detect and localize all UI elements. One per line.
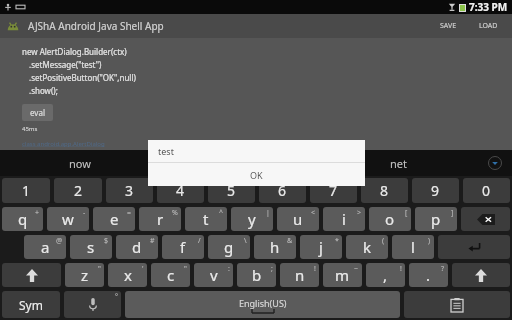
- staticText: =: [127, 208, 132, 218]
- button[interactable]: u: [277, 207, 319, 231]
- button[interactable]: k: [346, 235, 388, 259]
- button[interactable]: t: [185, 207, 227, 231]
- button[interactable]: 7: [310, 178, 357, 203]
- button[interactable]: j: [300, 235, 342, 259]
- staticText: a: [41, 237, 50, 257]
- staticText: eval: [30, 107, 45, 118]
- button[interactable]: b: [237, 263, 276, 287]
- staticText: LOAD: [479, 21, 498, 31]
- staticText: p: [431, 209, 441, 229]
- staticText: y: [248, 209, 256, 229]
- button[interactable]: class android.app.AlertDialog: [22, 140, 105, 148]
- button[interactable]: Voice input: [64, 291, 121, 318]
- button[interactable]: .: [409, 263, 448, 287]
- button[interactable]: 9: [412, 178, 459, 203]
- button[interactable]: a: [24, 235, 66, 259]
- staticText: r: [157, 209, 164, 229]
- staticText: #: [150, 236, 155, 246]
- staticText: net: [390, 156, 407, 171]
- staticText: 9: [431, 181, 440, 200]
- staticText: z: [81, 265, 89, 285]
- staticText: w: [62, 209, 74, 229]
- button[interactable]: 4: [157, 178, 204, 203]
- staticText: °: [115, 292, 118, 302]
- button[interactable]: 3: [106, 178, 153, 203]
- button[interactable]: [160, 150, 319, 176]
- button[interactable]: eval: [22, 104, 53, 121]
- staticText: ): [428, 236, 431, 246]
- button[interactable]: net: [319, 150, 478, 176]
- button[interactable]: ,: [366, 263, 405, 287]
- button[interactable]: 2: [54, 178, 102, 203]
- staticText: %: [172, 208, 178, 218]
- staticText: c: [167, 265, 175, 285]
- staticText: 5: [227, 181, 236, 200]
- button[interactable]: i: [323, 207, 365, 231]
- staticText: 7: [329, 181, 338, 200]
- staticText: -: [83, 208, 86, 218]
- staticText: ?: [441, 264, 445, 274]
- button[interactable]: y: [231, 207, 273, 231]
- staticText: .setPositiveButton("OK",null): [29, 72, 136, 83]
- button[interactable]: 6: [259, 178, 306, 203]
- staticText: !: [314, 264, 316, 274]
- button[interactable]: w: [47, 207, 89, 231]
- button[interactable]: n: [280, 263, 319, 287]
- staticText: class android.app.AlertDialog: [22, 140, 105, 148]
- button[interactable]: Backspace: [461, 207, 510, 231]
- button[interactable]: Enter: [438, 235, 510, 259]
- button[interactable]: c: [151, 263, 190, 287]
- button[interactable]: p: [415, 207, 457, 231]
- staticText: i: [342, 209, 346, 229]
- button[interactable]: Shift: [2, 263, 61, 287]
- button[interactable]: s: [70, 235, 112, 259]
- button[interactable]: v: [194, 263, 233, 287]
- button[interactable]: x: [108, 263, 147, 287]
- staticText: >: [357, 208, 362, 218]
- staticText: $: [104, 236, 109, 246]
- button[interactable]: Clipboard: [404, 291, 510, 318]
- button[interactable]: 1: [2, 178, 50, 203]
- button[interactable]: e: [93, 207, 135, 231]
- button[interactable]: Sym: [2, 291, 60, 318]
- staticText: 4: [176, 181, 185, 200]
- staticText: \: [244, 236, 247, 246]
- button[interactable]: h: [254, 235, 296, 259]
- button[interactable]: 8: [361, 178, 408, 203]
- staticText: g: [224, 237, 234, 257]
- staticText: e: [110, 209, 119, 229]
- staticText: SAVE: [440, 21, 457, 31]
- button[interactable]: English(US): [125, 291, 400, 318]
- button[interactable]: SAVE: [434, 17, 463, 35]
- button[interactable]: now: [0, 150, 160, 176]
- staticText: ~: [354, 264, 359, 274]
- staticText: ]: [451, 208, 454, 218]
- staticText: OK: [250, 169, 263, 181]
- button[interactable]: 5: [208, 178, 255, 203]
- button[interactable]: f: [162, 235, 204, 259]
- staticText: 2: [74, 181, 83, 200]
- staticText: |: [266, 208, 270, 218]
- button[interactable]: o: [369, 207, 411, 231]
- button[interactable]: q: [2, 207, 43, 231]
- button[interactable]: 0: [463, 178, 510, 203]
- staticText: s: [87, 237, 95, 257]
- button[interactable]: z: [65, 263, 104, 287]
- button[interactable]: Shift: [452, 263, 510, 287]
- button[interactable]: More suggestions: [478, 150, 512, 176]
- button[interactable]: l: [392, 235, 434, 259]
- button[interactable]: OK: [148, 163, 365, 186]
- staticText: now: [69, 156, 91, 171]
- button[interactable]: d: [116, 235, 158, 259]
- staticText: h: [270, 237, 280, 257]
- staticText: b: [252, 265, 262, 285]
- button[interactable]: g: [208, 235, 250, 259]
- button[interactable]: r: [139, 207, 181, 231]
- button[interactable]: m: [323, 263, 362, 287]
- staticText: /: [198, 236, 201, 246]
- button[interactable]: LOAD: [473, 17, 504, 35]
- staticText: q: [18, 209, 28, 229]
- staticText: [: [405, 208, 408, 218]
- staticText: 1: [22, 181, 31, 200]
- staticText: 45ms: [22, 125, 38, 133]
